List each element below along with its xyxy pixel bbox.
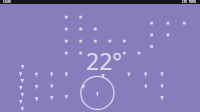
staticText: 12:30	[3, 0, 11, 4]
staticText: LTE 100%	[182, 0, 197, 4]
staticText: 22°	[86, 45, 123, 76]
